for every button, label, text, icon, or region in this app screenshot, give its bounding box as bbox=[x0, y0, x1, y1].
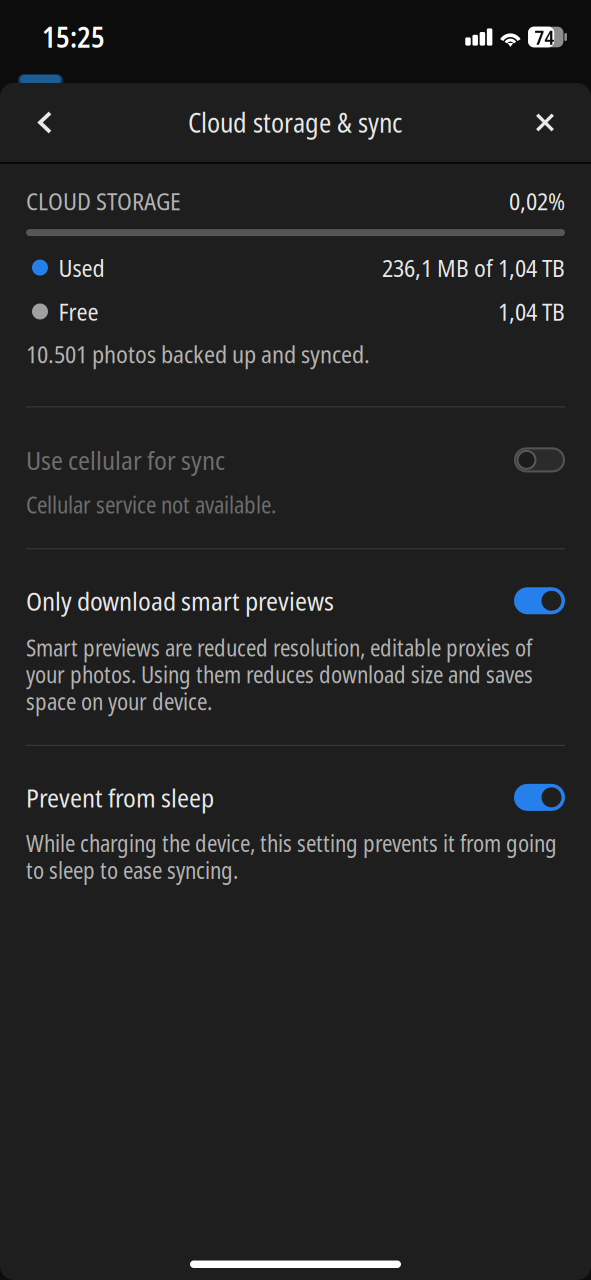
staticText: your photos. Using them reduces download… bbox=[26, 659, 533, 690]
button[interactable]: Close bbox=[519, 92, 571, 152]
staticText: Used bbox=[58, 251, 104, 284]
staticText: Free bbox=[58, 295, 98, 328]
button[interactable]: Only download smart previews bbox=[26, 583, 565, 619]
staticText: Cellular service not available. bbox=[26, 489, 276, 520]
staticText: 10.501 photos backed up and synced. bbox=[26, 338, 370, 370]
button[interactable]: Use cellular for sync bbox=[26, 442, 565, 478]
staticText: 0,02% bbox=[509, 185, 565, 217]
staticText: space on your device. bbox=[26, 686, 212, 717]
staticText: 15:25 bbox=[42, 18, 105, 56]
staticText: Only download smart previews bbox=[26, 583, 334, 618]
button[interactable]: Back bbox=[19, 92, 71, 152]
button[interactable]: Prevent from sleep bbox=[26, 779, 565, 815]
staticText: Cloud storage & sync bbox=[188, 104, 402, 141]
staticText: to sleep to ease syncing. bbox=[26, 855, 238, 886]
staticText: 1,04 TB bbox=[498, 295, 565, 328]
staticText: Use cellular for sync bbox=[26, 442, 225, 478]
staticText: CLOUD STORAGE bbox=[26, 185, 181, 217]
staticText: 236,1 MB of 1,04 TB bbox=[382, 251, 565, 284]
staticText: While charging the device, this setting … bbox=[26, 828, 557, 859]
staticText: Prevent from sleep bbox=[26, 780, 214, 815]
staticText: Smart previews are reduced resolution, e… bbox=[26, 632, 532, 663]
staticText: 74 bbox=[534, 23, 554, 51]
